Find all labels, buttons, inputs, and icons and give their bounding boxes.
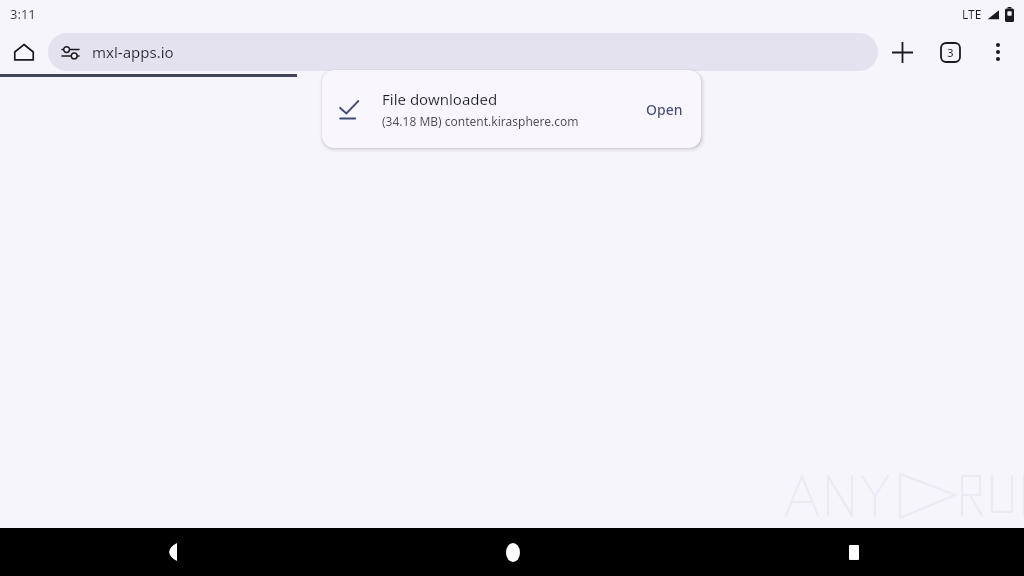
button[interactable]: More options [974, 28, 1022, 76]
staticText: mxl-apps.io [92, 42, 174, 62]
button[interactable]: New tab [878, 28, 926, 76]
staticText: 3:11 [10, 5, 36, 23]
button[interactable]: Recent apps [683, 528, 1024, 576]
staticText: 3 [947, 45, 954, 60]
button[interactable]: Switch tabs, 3 open [926, 28, 974, 76]
button[interactable]: Open [632, 90, 697, 129]
staticText: (34.18 MB) content.kirasphere.com [382, 113, 579, 129]
button[interactable]: File downloaded [322, 70, 701, 148]
staticText: LTE [962, 6, 982, 22]
button[interactable]: Home [342, 528, 683, 576]
button[interactable]: Back [0, 528, 342, 576]
button[interactable]: Home [0, 28, 48, 76]
staticText: Open [646, 100, 683, 119]
staticText: File downloaded [382, 89, 498, 109]
button[interactable]: mxl-apps.io [48, 33, 878, 71]
